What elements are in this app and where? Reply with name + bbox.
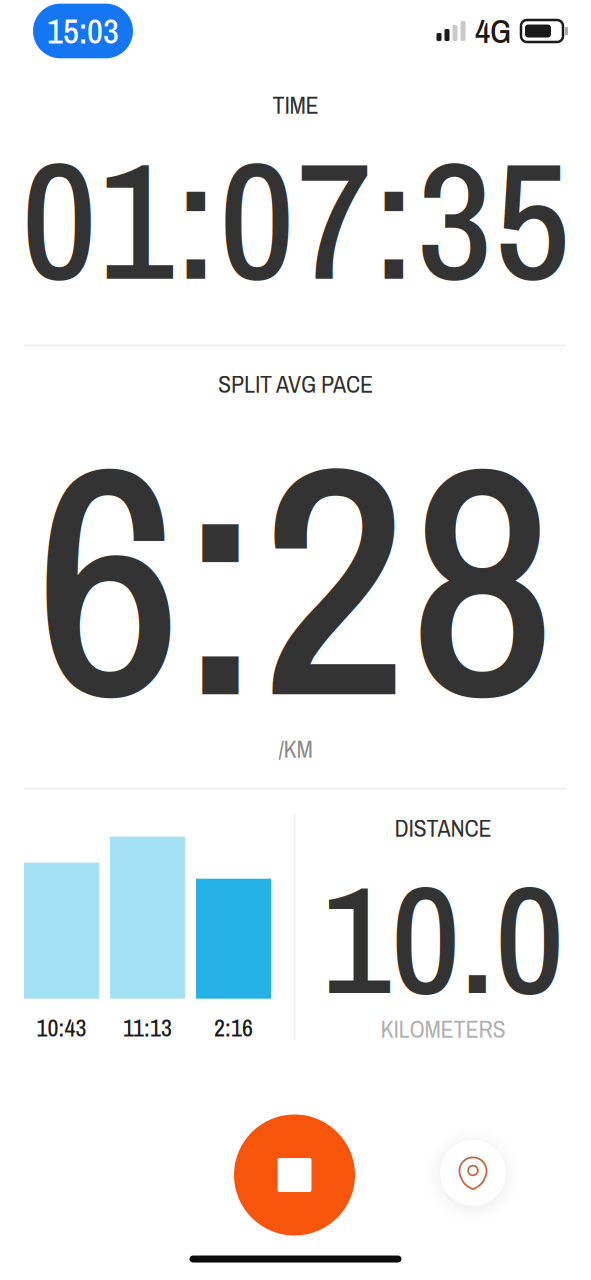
staticText: SPLIT AVG PACE <box>218 368 373 400</box>
staticText: 4G <box>475 9 511 53</box>
staticText: 15:03 <box>47 8 119 54</box>
button[interactable]: Map <box>440 1140 506 1206</box>
staticText: DISTANCE <box>394 812 491 844</box>
staticText: TIME <box>272 89 318 121</box>
staticText: 10.0 <box>322 836 564 1040</box>
staticText: 2:16 <box>214 1012 253 1044</box>
staticText: 11:13 <box>123 1012 172 1044</box>
staticText: 10:43 <box>36 1012 86 1044</box>
staticText: /KM <box>278 733 312 765</box>
button[interactable]: Stop <box>234 1114 355 1235</box>
staticText: 6:28 <box>34 359 556 795</box>
staticText: KILOMETERS <box>380 1013 505 1045</box>
staticText: 01:07:35 <box>21 108 570 330</box>
